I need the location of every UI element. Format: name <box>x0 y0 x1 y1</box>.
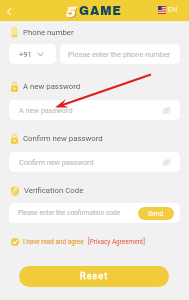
button[interactable]: Back <box>2 4 16 18</box>
button[interactable]: Send <box>138 207 174 220</box>
staticText: +91 <box>19 50 32 59</box>
button[interactable]: Show password <box>162 159 171 166</box>
button[interactable]: Phone number <box>11 27 74 38</box>
staticText: GAME <box>79 4 122 17</box>
staticText: 5 <box>65 4 75 20</box>
staticText: Confirm new password <box>23 134 103 143</box>
button[interactable]: +91 <box>9 44 56 64</box>
button[interactable]: A new password <box>11 81 81 92</box>
staticText: Reset <box>80 271 109 282</box>
staticText: [Privacy Agreement] <box>88 238 145 246</box>
staticText: Please enter the phone number <box>68 50 171 59</box>
button[interactable]: A new password <box>9 100 180 120</box>
button[interactable]: Confirm new password <box>11 133 103 144</box>
button[interactable]: Please enter the phone number <box>60 44 180 64</box>
staticText: EN <box>168 5 178 14</box>
staticText: Verification Code <box>24 186 84 195</box>
staticText: Confirm new password <box>19 158 94 167</box>
staticText: Send <box>148 210 164 218</box>
button[interactable]: Please enter the confirmation code <box>9 203 180 223</box>
staticText: 5 <box>66 5 76 21</box>
button[interactable]: Reset <box>19 266 169 287</box>
button[interactable]: EN <box>158 5 178 14</box>
staticText: Please enter the confirmation code <box>18 209 121 217</box>
button[interactable]: I have read and agree <box>11 236 145 248</box>
staticText: I have read and agree <box>23 238 84 246</box>
staticText: A new password <box>23 82 81 91</box>
button[interactable]: Verification Code <box>11 185 84 196</box>
button[interactable]: Confirm new password <box>9 152 180 172</box>
staticText: A new password <box>19 106 73 115</box>
staticText: Phone number <box>23 28 74 37</box>
button[interactable]: Show password <box>162 107 171 114</box>
